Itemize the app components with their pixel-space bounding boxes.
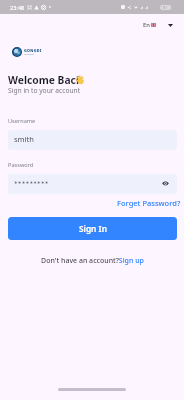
staticText: 81 <box>163 5 168 10</box>
button[interactable]: Forget Password? <box>117 198 181 208</box>
staticText: Username <box>8 117 36 125</box>
staticText: Sign in to your account <box>8 86 81 95</box>
button[interactable]: Don't have an account?Sign up <box>41 256 144 266</box>
button[interactable]: Sign In <box>8 217 177 240</box>
staticText: Password <box>8 161 34 169</box>
staticText: Sign In <box>79 223 107 234</box>
staticText: smith <box>14 134 34 144</box>
staticText: ∗∗∗∗∗∗∗∗∗ <box>14 180 49 185</box>
staticText: 23:48 <box>10 4 25 12</box>
button[interactable]: ∗∗∗∗∗∗∗∗∗ <box>8 174 177 194</box>
staticText: technology <box>24 53 34 56</box>
staticText: En <box>143 21 150 29</box>
button[interactable]: En <box>141 19 175 31</box>
staticText: Welcome Back <box>8 73 83 87</box>
button[interactable]: smith <box>8 130 177 150</box>
staticText: GONGDI <box>24 48 42 53</box>
button[interactable]: Show password <box>160 178 171 189</box>
